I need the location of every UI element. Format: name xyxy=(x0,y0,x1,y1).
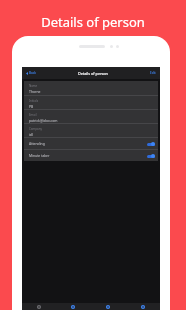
staticText: Back xyxy=(29,71,37,75)
button[interactable]: Name xyxy=(24,81,158,95)
staticText: Details of person xyxy=(0,13,186,31)
button[interactable]: Calendar xyxy=(90,303,125,310)
button[interactable]: Edit xyxy=(146,67,160,79)
staticText: Email xyxy=(29,113,37,117)
staticText: Attending xyxy=(29,141,45,146)
staticText: patrick@idox.com xyxy=(29,118,58,123)
button[interactable]: Back xyxy=(22,67,41,79)
button[interactable]: Attending xyxy=(24,138,158,149)
staticText: Edit xyxy=(150,71,156,75)
staticText: Company xyxy=(29,127,42,131)
button[interactable]: Email xyxy=(24,110,158,123)
button[interactable]: Initials xyxy=(24,96,158,109)
staticText: idl xyxy=(29,132,33,137)
button[interactable]: Settings xyxy=(125,303,160,310)
staticText: Name xyxy=(29,84,38,88)
staticText: Minute taker xyxy=(29,153,50,158)
staticText: Thorne xyxy=(29,89,41,94)
staticText: PB xyxy=(29,104,34,109)
staticText: Initials xyxy=(29,99,39,103)
staticText: Details of person xyxy=(78,71,108,76)
button[interactable]: Minute taker xyxy=(24,150,158,161)
button[interactable]: Home xyxy=(22,303,56,310)
button[interactable]: People xyxy=(56,303,90,310)
button[interactable]: Company xyxy=(24,124,158,137)
